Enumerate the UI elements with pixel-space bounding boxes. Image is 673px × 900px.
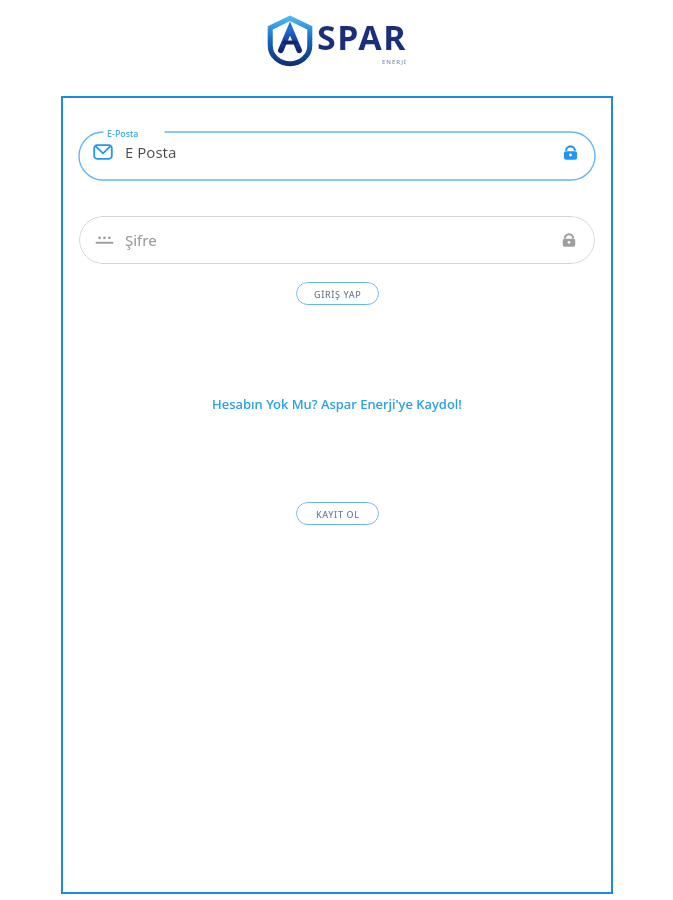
staticText: ENERJİ xyxy=(382,58,407,66)
other: Şifreyi gizle xyxy=(561,232,577,248)
other: E-Posta xyxy=(93,142,113,162)
button[interactable]: E-Posta xyxy=(79,124,595,180)
staticText: E-Posta xyxy=(107,127,139,139)
staticText: SPAR xyxy=(317,14,407,60)
staticText: Hesabın Yok Mu? Aspar Enerji'ye Kaydol! xyxy=(212,395,462,413)
other: Şifre xyxy=(95,231,114,250)
staticText: E Posta xyxy=(125,142,177,162)
staticText: GİRİŞ YAP xyxy=(314,288,362,300)
button[interactable]: KAYIT OL xyxy=(296,502,379,525)
staticText: Şifre xyxy=(125,230,157,250)
button[interactable]: Şifre xyxy=(79,216,595,264)
other: Güvenli xyxy=(562,144,579,161)
button[interactable]: GİRİŞ YAP xyxy=(296,282,379,305)
button[interactable]: Hesabın Yok Mu? Aspar Enerji'ye Kaydol! xyxy=(204,391,470,417)
staticText: KAYIT OL xyxy=(316,508,360,520)
